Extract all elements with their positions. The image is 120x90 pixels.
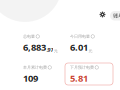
staticText: 今日用电量 <box>70 34 90 39</box>
button[interactable]: Settings <box>98 10 107 19</box>
staticText: 账单 <box>113 12 120 19</box>
button[interactable]: 账单 <box>110 11 120 21</box>
staticText: 元 <box>54 48 58 53</box>
staticText: 下月预计电费 <box>70 65 94 70</box>
staticText: 本月累计电费 <box>23 65 47 70</box>
staticText: .97 <box>46 46 53 53</box>
staticText: 元 <box>88 48 92 53</box>
staticText: 6.01 <box>70 41 88 53</box>
staticText: 总电量 <box>23 34 35 39</box>
staticText: 5.81 <box>70 72 88 84</box>
staticText: 6,883 <box>23 41 46 53</box>
staticText: 109 <box>23 72 38 84</box>
